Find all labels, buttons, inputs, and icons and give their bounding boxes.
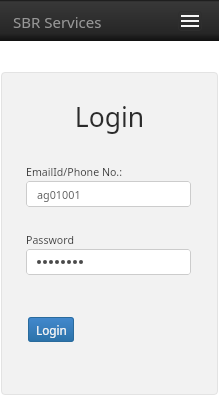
staticText: ag01001 — [37, 187, 81, 202]
staticText: SBR Services — [13, 12, 102, 32]
button[interactable]: Login — [28, 317, 74, 342]
button[interactable]: ag01001 — [26, 181, 191, 207]
staticText: Password — [26, 233, 74, 247]
staticText: Login — [36, 322, 67, 338]
button[interactable] — [26, 249, 191, 275]
staticText: Login — [1, 99, 218, 135]
staticText: EmailId/Phone No.: — [26, 165, 123, 179]
button[interactable]: Menu — [178, 11, 202, 31]
